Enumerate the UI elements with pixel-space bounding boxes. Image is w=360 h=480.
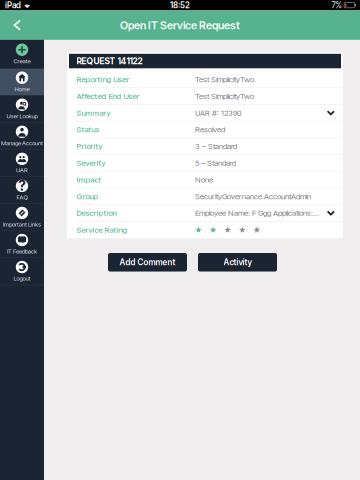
button[interactable]: Summary	[67, 105, 343, 121]
button[interactable]: Create	[0, 40, 44, 68]
button[interactable]: Add Comment	[108, 253, 187, 271]
button[interactable]: Description	[67, 205, 343, 222]
button[interactable]: ?	[0, 177, 44, 204]
staticText: Test SimplicityTwo	[195, 75, 254, 84]
staticText: Create	[13, 57, 30, 65]
staticText: Impact	[76, 175, 101, 184]
staticText: Home	[14, 85, 29, 93]
button[interactable]: Affected End User	[67, 88, 343, 105]
staticText: None	[195, 175, 213, 184]
staticText: Test SimplicityTwo	[195, 91, 254, 101]
staticText: Service Rating	[76, 225, 127, 235]
button[interactable]: Impact	[67, 171, 343, 188]
button[interactable]: Activity	[198, 253, 277, 271]
staticText: UAR	[16, 166, 28, 174]
button[interactable]: Severity	[67, 155, 343, 171]
staticText: 5 – Standard	[195, 158, 236, 168]
button[interactable]: Logout	[0, 258, 44, 285]
button[interactable]: Home	[0, 69, 44, 95]
button[interactable]: Back	[3, 10, 31, 40]
button[interactable]: IT Feedback	[0, 231, 44, 258]
staticText: 18:52	[170, 0, 190, 10]
staticText: Manage Account	[1, 139, 43, 147]
staticText: IT Feedback	[7, 248, 37, 255]
staticText: ?	[18, 178, 25, 194]
staticText: Summary	[76, 108, 110, 117]
staticText: Resolved	[195, 125, 225, 134]
button[interactable]: Status	[67, 121, 343, 138]
button[interactable]: UAR	[0, 150, 44, 177]
staticText: Employee Name: F Ggg Applications:…	[195, 208, 319, 218]
button[interactable]: Service Rating	[67, 222, 343, 238]
staticText: Affected End User	[76, 91, 139, 101]
staticText: Description	[76, 208, 116, 218]
staticText: Priority	[76, 141, 102, 151]
button[interactable]: User Lookup	[0, 96, 44, 122]
staticText: Logout	[13, 275, 30, 282]
staticText: Reporting User	[76, 75, 129, 84]
staticText: Group	[76, 191, 98, 201]
button[interactable]: Priority	[67, 138, 343, 155]
staticText: FAQ	[16, 194, 27, 201]
button[interactable]: Reporting User	[67, 71, 343, 88]
button[interactable]: Manage Account	[0, 123, 44, 149]
button[interactable]: Group	[67, 188, 343, 205]
staticText: Severity	[76, 158, 105, 168]
staticText: iPad	[5, 0, 21, 10]
staticText: REQUEST 141122	[76, 56, 142, 66]
staticText: Add Comment	[119, 257, 175, 267]
staticText: Status	[76, 125, 99, 134]
staticText: SecurityGovernance.AccountAdmin	[195, 191, 311, 201]
button[interactable]: Important Links	[0, 204, 44, 231]
staticText: User Lookup	[6, 112, 37, 120]
staticText: Important Links	[3, 221, 41, 228]
staticText: 7%	[332, 0, 342, 10]
staticText: UAR #: 12390	[195, 108, 242, 117]
staticText: Activity	[223, 257, 251, 267]
staticText: 3 – Standard	[195, 141, 237, 151]
staticText: Open IT Service Request	[120, 18, 240, 32]
